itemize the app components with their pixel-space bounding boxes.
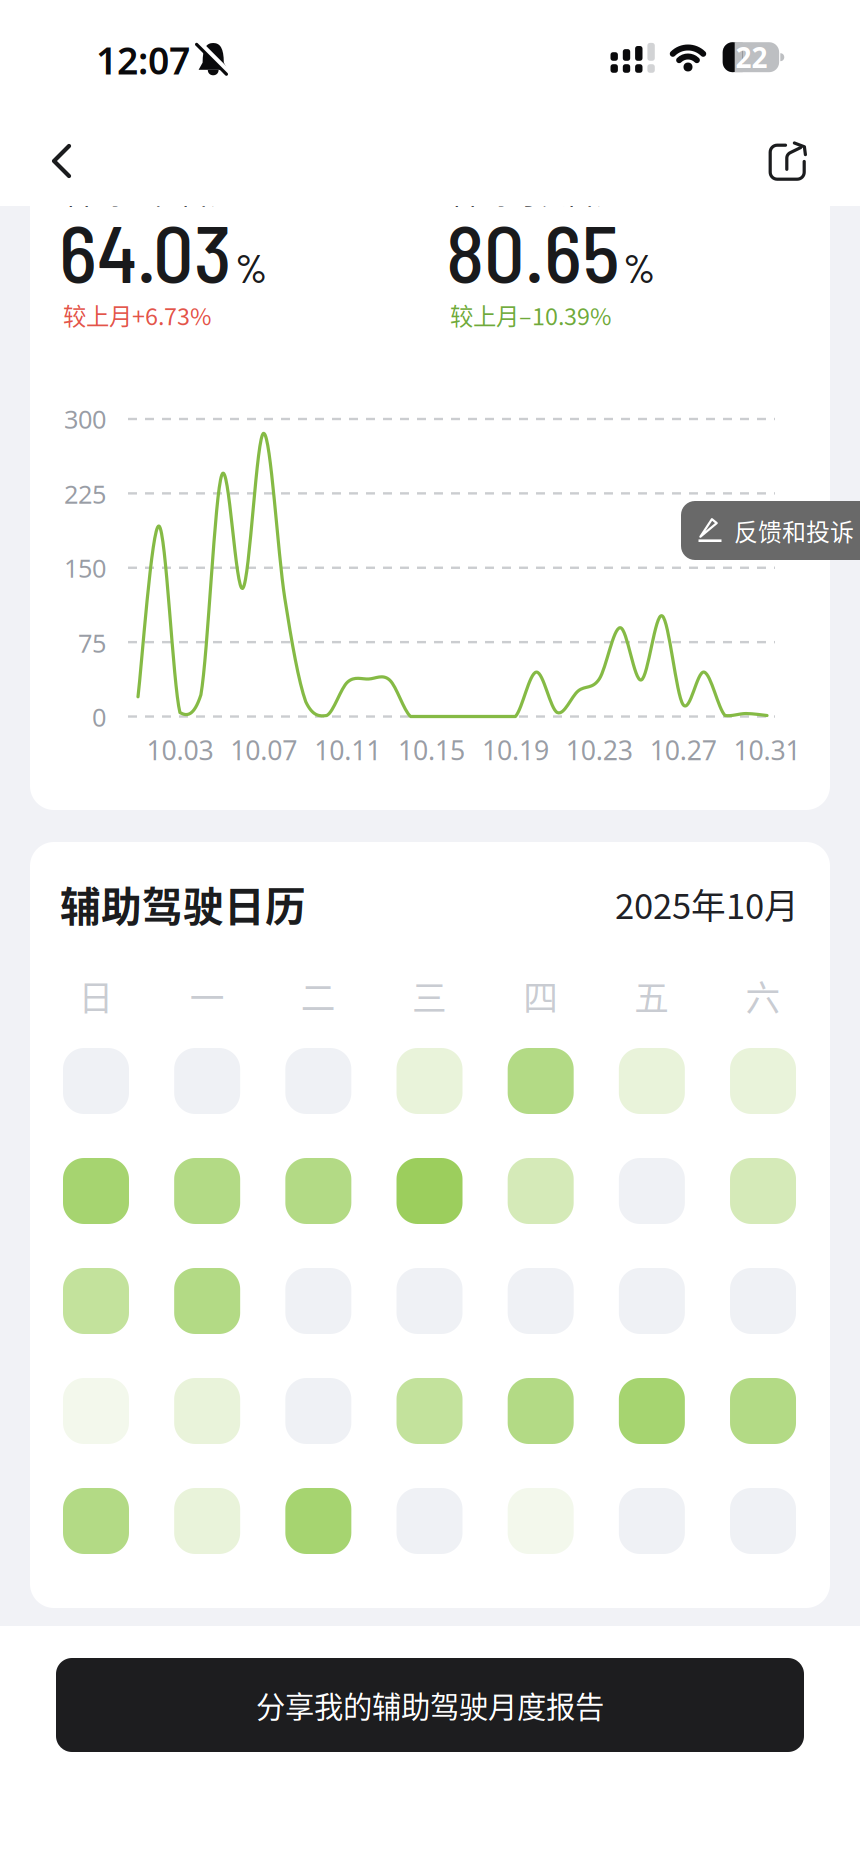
staticText: 一 [190, 971, 225, 1021]
staticText: 辅助驾驶日历 [60, 875, 306, 933]
staticText: 10.11 [314, 732, 381, 768]
button[interactable]: 分享我的辅助驾驶月度报告 [56, 1658, 804, 1752]
staticText: 智驾时长占比 [450, 170, 624, 212]
staticText: 四 [523, 971, 558, 1021]
staticText: 300 [64, 402, 106, 436]
staticText: 80.65 [446, 203, 620, 299]
staticText: 10.27 [650, 732, 717, 768]
button[interactable]: 反馈和投诉 [681, 501, 860, 560]
staticText: 10.31 [734, 732, 801, 768]
staticText: 分享我的辅助驾驶月度报告 [256, 1684, 604, 1726]
staticText: 22 [735, 39, 767, 76]
staticText: 10.15 [398, 732, 465, 768]
staticText: 10.23 [566, 732, 633, 768]
staticText: 日 [78, 971, 113, 1021]
staticText: 225 [64, 477, 106, 511]
staticText: 2025年10月 [615, 879, 799, 929]
staticText: 较上月+6.73% [63, 298, 211, 332]
staticText: 智驾里程占比 [64, 170, 238, 212]
staticText: 12:07 [96, 35, 190, 85]
staticText: 三 [412, 971, 447, 1021]
staticText: 较上月–10.39% [450, 298, 611, 332]
staticText: 64.03 [59, 203, 232, 299]
staticText: 反馈和投诉 [734, 513, 854, 548]
staticText: 10.19 [482, 732, 549, 768]
staticText: 75 [78, 626, 106, 660]
button[interactable]: Share [766, 141, 810, 185]
staticText: 150 [64, 551, 106, 585]
staticText: 二 [301, 971, 336, 1021]
staticText: 10.07 [230, 732, 297, 768]
staticText: 10.03 [146, 732, 213, 768]
staticText: % [235, 243, 267, 291]
staticText: 六 [745, 971, 780, 1021]
staticText: 0 [92, 700, 106, 734]
button[interactable]: Back [41, 139, 85, 183]
staticText: % [623, 243, 655, 291]
staticText: 五 [634, 971, 669, 1021]
